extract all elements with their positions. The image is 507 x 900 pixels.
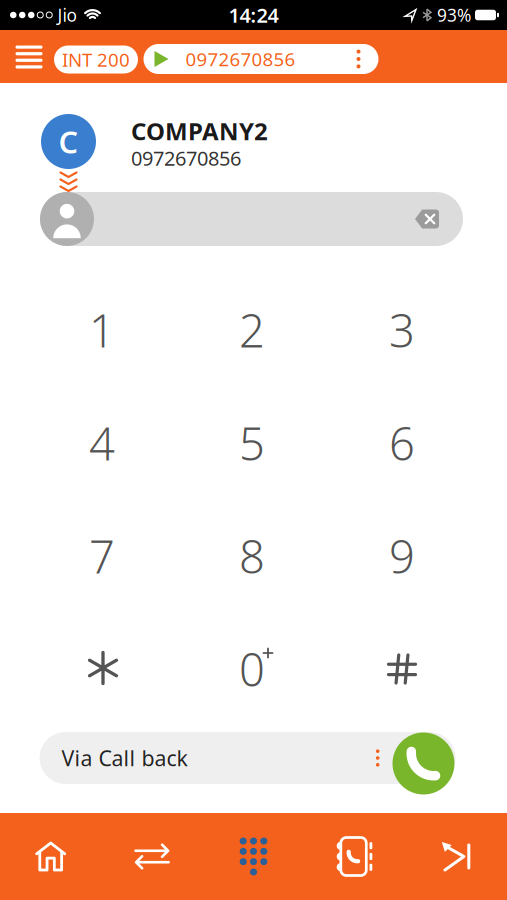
button[interactable]: Home [0,813,101,900]
staticText: 0 [239,639,265,699]
button[interactable]: 8 [207,516,297,596]
button[interactable]: INT 200 [54,45,138,73]
button[interactable]: Transfer [101,813,203,900]
button[interactable]: 1 [57,290,147,370]
staticText: 4 [89,413,115,473]
staticText: Jio [57,3,76,26]
staticText: 8 [239,526,265,586]
staticText: 9 [389,526,415,586]
staticText: 0972670856 [185,47,295,71]
staticText: 5 [239,413,265,473]
staticText: INT 200 [62,47,130,72]
staticText: 2 [239,300,265,360]
button[interactable]: Call [392,732,454,794]
button[interactable]: Contacts [304,813,406,900]
button[interactable]: 0 [207,629,297,709]
button[interactable]: 3 [357,290,447,370]
staticText: 1 [89,300,115,360]
button[interactable]: Pound [357,629,447,709]
button[interactable]: Via Call back [39,732,455,784]
staticText: Via Call back [61,744,187,772]
button[interactable]: 5 [207,403,297,483]
staticText: C [58,121,78,162]
button[interactable]: 2 [207,290,297,370]
staticText: 0972670856 [131,145,241,171]
button[interactable]: Delete [415,209,439,228]
button[interactable]: 9 [357,516,447,596]
staticText: 14:24 [228,2,278,28]
button[interactable]: Menu [9,37,49,77]
staticText: COMPANY2 [131,115,268,147]
staticText: 3 [389,300,415,360]
button[interactable]: 7 [57,516,147,596]
staticText: 7 [89,526,115,586]
button[interactable]: Star [58,628,148,708]
staticText: 93% [437,3,471,26]
button[interactable]: 4 [57,403,147,483]
button[interactable]: Call forward [406,813,507,900]
button[interactable]: Keypad [203,813,304,900]
button[interactable]: 0972670856 [143,44,378,74]
button[interactable]: 6 [357,403,447,483]
staticText: 6 [389,413,415,473]
